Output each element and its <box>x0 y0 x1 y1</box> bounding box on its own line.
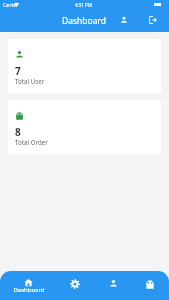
staticText: Total Order <box>15 138 48 146</box>
staticText: Dashboard <box>13 286 45 294</box>
button[interactable]: 8 <box>8 100 161 154</box>
button[interactable]: 7 <box>8 39 161 93</box>
staticText: Carrier <box>3 2 18 8</box>
staticText: Dashboard <box>62 15 107 27</box>
staticText: 4:51 PM <box>75 2 92 8</box>
button[interactable]: Settings <box>55 271 93 300</box>
button[interactable]: Logout <box>142 9 163 30</box>
staticText: Total User <box>15 77 45 85</box>
staticText: 8 <box>15 125 21 139</box>
button[interactable]: Dashboard <box>0 271 55 300</box>
staticText: 7 <box>15 64 21 78</box>
button[interactable]: Account <box>113 9 134 30</box>
button[interactable]: Orders <box>131 271 169 300</box>
button[interactable]: Profile <box>93 271 131 300</box>
